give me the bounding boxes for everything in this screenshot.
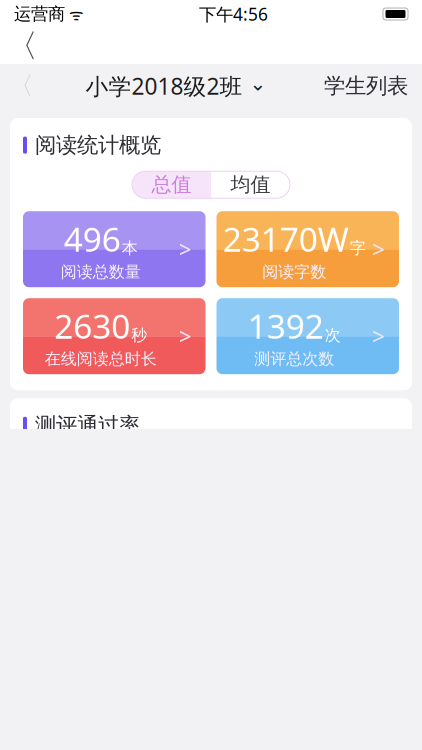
button[interactable]: 23170W <box>216 211 399 287</box>
staticText: 下午4:56 <box>199 2 268 25</box>
staticText: 秒 <box>131 325 147 345</box>
staticText: 1392 <box>248 304 324 348</box>
staticText: > <box>372 234 385 264</box>
staticText: 阅读总数量 <box>61 262 141 282</box>
staticText: 运营商 <box>14 3 65 25</box>
staticText: 本 <box>122 238 138 258</box>
staticText: 均值 <box>230 172 270 197</box>
staticText: ᯤ <box>65 3 84 25</box>
staticText: 学生列表 <box>324 73 408 99</box>
staticText: 测评通过率 <box>35 412 140 438</box>
button[interactable]: 1392 <box>216 298 399 374</box>
staticText: 23170W <box>223 217 349 261</box>
staticText: > <box>178 234 191 264</box>
staticText: 字 <box>350 238 366 258</box>
staticText: 测评总次数 <box>254 349 334 369</box>
button[interactable]: 496 <box>23 211 205 287</box>
button[interactable]: 2630 <box>23 298 205 374</box>
staticText: 在线阅读总时长 <box>45 349 157 369</box>
button[interactable]: 总值 <box>132 171 211 198</box>
button[interactable]: 小学2018级2班 <box>85 61 266 111</box>
staticText: 小学2018级2班 <box>85 71 242 101</box>
staticText: 2630 <box>54 304 130 348</box>
staticText: 阅读字数 <box>262 262 326 282</box>
staticText: 阅读统计概览 <box>35 132 161 158</box>
staticText: > <box>178 321 191 351</box>
staticText: 总值 <box>151 172 191 197</box>
button[interactable]: 均值 <box>211 171 290 198</box>
staticText: 〈 <box>6 26 38 66</box>
staticText: 次 <box>325 325 341 345</box>
staticText: 496 <box>64 217 121 261</box>
staticText: ⌄ <box>249 72 266 95</box>
staticText: > <box>372 321 385 351</box>
button[interactable]: 学生列表 <box>310 61 422 111</box>
staticText: 〈 <box>8 70 33 101</box>
button[interactable]: Back <box>0 28 44 64</box>
